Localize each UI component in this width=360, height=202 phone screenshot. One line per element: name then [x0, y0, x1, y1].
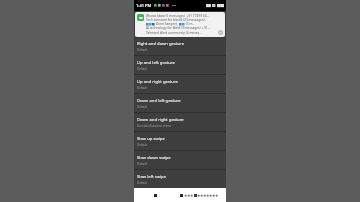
button[interactable]: Slow up swipe: [134, 132, 226, 150]
staticText: Default: [137, 181, 148, 185]
staticText: Up and left gesture: [137, 60, 175, 66]
button[interactable]: Recent apps: [178, 192, 184, 198]
button[interactable]: Right and down gesture: [134, 38, 226, 55]
staticText: Up and right gesture: [137, 79, 178, 85]
staticText: Default: [137, 105, 148, 109]
staticText: Slow left swipe: [137, 174, 167, 180]
staticText: Slow down swipe: [137, 155, 171, 161]
button[interactable]: Collapse notification: [218, 30, 223, 35]
button[interactable]: Down and right gesture: [134, 113, 226, 131]
staticText: Down and left gesture: [137, 98, 181, 104]
button[interactable]: Slow down swipe: [134, 151, 226, 169]
staticText: Function/function menu: [137, 124, 172, 128]
staticText: Slow up swipe: [137, 136, 165, 142]
button[interactable]: Down and left gesture: [134, 94, 226, 112]
staticText: 1:41 PM: [136, 3, 152, 8]
staticText: Talented blind community (4 messa…: [146, 31, 218, 35]
button[interactable]: Slow left swipe: [134, 170, 226, 188]
staticText: (3 m…: [185, 22, 195, 26]
staticText: AI technology for blind (3 messages) +91…: [146, 26, 223, 30]
button[interactable]: Up and right gesture: [134, 75, 226, 93]
staticText: Right and down gesture: [137, 41, 185, 47]
staticText: Demi Sangeet,: [156, 22, 179, 26]
staticText: Default: [137, 48, 148, 52]
staticText: Down and right gesture: [137, 117, 184, 123]
staticText: Default: [137, 143, 148, 147]
staticText: Tech assistant for blind3 (23 messages)…: [146, 18, 223, 22]
button[interactable]: Messages app icon: [135, 12, 225, 37]
staticText: Default: [137, 67, 148, 71]
button[interactable]: Home: [152, 192, 158, 198]
button[interactable]: Up and left gesture: [134, 56, 226, 74]
other: Messages app icon: [137, 14, 144, 21]
staticText: Bharat Idata (5 messages) +91 77499 04…: [146, 14, 223, 18]
staticText: Default: [137, 86, 148, 90]
staticText: Default: [137, 162, 148, 166]
